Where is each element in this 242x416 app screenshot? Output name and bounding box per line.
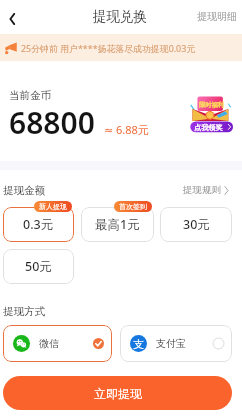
staticText: 25分钟前 用户****扬花落尽成功提现0.03元 xyxy=(21,42,196,54)
staticText: 限时福利 xyxy=(199,101,224,109)
staticText: 0.3元 xyxy=(23,216,54,233)
staticText: 支付宝 xyxy=(156,337,186,350)
staticText: 提现金额 xyxy=(3,184,45,197)
button[interactable]: Back xyxy=(2,9,21,28)
staticText: 最高1元 xyxy=(95,216,140,233)
button[interactable]: 提现明细 xyxy=(197,10,237,23)
staticText: 微信 xyxy=(39,337,59,350)
staticText: 68800 xyxy=(9,102,95,143)
button[interactable]: 0.3元 xyxy=(3,207,74,242)
staticText: 提现规则 xyxy=(183,184,221,196)
staticText: 提现明细 xyxy=(197,10,237,23)
staticText: 50元 xyxy=(25,258,52,275)
button[interactable]: 支 xyxy=(120,325,232,362)
staticText: 新人提现 xyxy=(39,202,67,211)
button[interactable]: 限时福利 点我领奖 xyxy=(189,93,235,134)
button[interactable]: 最高1元 xyxy=(81,207,154,242)
staticText: 立即提现 xyxy=(94,386,142,401)
button[interactable]: 立即提现 xyxy=(3,376,232,410)
staticText: ≈ 6.88元 xyxy=(104,122,149,137)
staticText: 提现方式 xyxy=(3,305,45,318)
staticText: 首次签到 xyxy=(119,202,147,211)
button[interactable]: 50元 xyxy=(3,249,74,284)
staticText: 支 xyxy=(133,337,144,351)
button[interactable]: 提现规则 xyxy=(183,184,229,196)
button[interactable]: 30元 xyxy=(160,207,232,242)
staticText: 30元 xyxy=(183,216,210,233)
staticText: 点我领奖 xyxy=(194,123,223,132)
button[interactable]: 微信 xyxy=(3,325,112,362)
staticText: 当前金币 xyxy=(9,89,51,102)
staticText: 提现兑换 xyxy=(93,8,147,25)
